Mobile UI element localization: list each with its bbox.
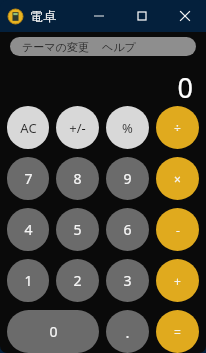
button[interactable]: 6: [106, 208, 149, 251]
staticText: ÷: [174, 120, 181, 136]
button[interactable]: 4: [7, 208, 49, 251]
staticText: 3: [123, 271, 132, 290]
button[interactable]: .: [106, 310, 149, 353]
button[interactable]: Maximize: [120, 0, 163, 32]
staticText: -: [176, 222, 180, 238]
staticText: テーマの変更: [22, 40, 89, 54]
staticText: 0: [177, 69, 193, 106]
staticText: 2: [73, 271, 82, 290]
button[interactable]: Close: [163, 0, 206, 32]
button[interactable]: 8: [56, 157, 99, 200]
staticText: 9: [123, 169, 132, 188]
button[interactable]: 3: [106, 259, 149, 302]
button[interactable]: 9: [106, 157, 149, 200]
button[interactable]: +/-: [56, 106, 99, 149]
staticText: ×: [174, 171, 181, 187]
button[interactable]: ×: [156, 157, 199, 200]
button[interactable]: 2: [56, 259, 99, 302]
button[interactable]: 5: [56, 208, 99, 251]
button[interactable]: %: [106, 106, 149, 149]
staticText: 5: [73, 220, 82, 239]
staticText: 4: [24, 220, 33, 239]
button[interactable]: +: [156, 259, 199, 302]
staticText: 1: [24, 271, 33, 290]
button[interactable]: AC: [7, 106, 49, 149]
button[interactable]: 1: [7, 259, 49, 302]
staticText: .: [125, 322, 130, 342]
button[interactable]: -: [156, 208, 199, 251]
staticText: 7: [24, 169, 33, 188]
staticText: AC: [20, 119, 37, 137]
staticText: =: [174, 324, 181, 340]
staticText: 6: [123, 220, 132, 239]
staticText: 0: [49, 322, 58, 341]
button[interactable]: Minimize: [77, 0, 120, 32]
staticText: +/-: [69, 119, 86, 137]
button[interactable]: テーマの変更: [22, 40, 89, 54]
staticText: ヘルプ: [102, 40, 136, 54]
button[interactable]: 0: [7, 310, 99, 353]
staticText: %: [122, 119, 133, 137]
staticText: +: [174, 273, 181, 289]
button[interactable]: =: [156, 310, 199, 353]
button[interactable]: 7: [7, 157, 49, 200]
staticText: 電卓: [30, 8, 56, 24]
button[interactable]: ÷: [156, 106, 199, 149]
button[interactable]: ヘルプ: [102, 40, 136, 54]
staticText: 8: [73, 169, 82, 188]
